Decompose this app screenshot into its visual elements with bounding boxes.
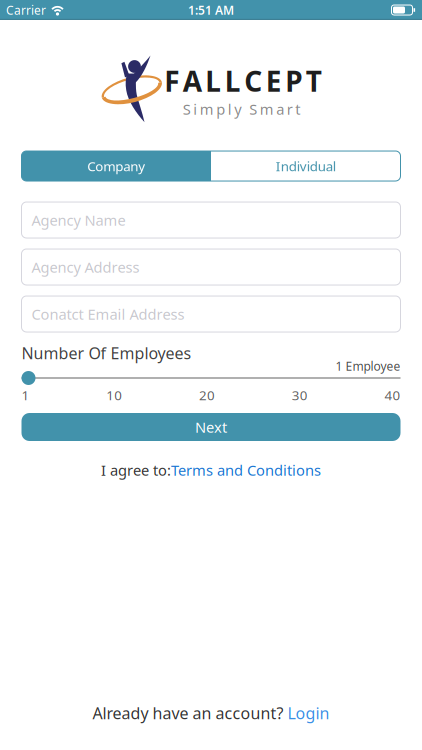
staticText: Next <box>195 417 227 437</box>
staticText: m <box>260 99 274 119</box>
staticText: 30 <box>292 386 308 404</box>
staticText: C <box>244 62 262 100</box>
staticText: Number Of Employees <box>21 342 191 364</box>
staticText: Carrier <box>6 2 46 18</box>
staticText: r <box>287 99 293 119</box>
button[interactable]: Company <box>21 151 211 181</box>
staticText: T <box>306 62 322 100</box>
staticText: Agency Address <box>31 257 139 277</box>
staticText: 10 <box>106 386 122 404</box>
staticText: I agree to: <box>101 460 171 480</box>
staticText: y <box>234 99 241 119</box>
staticText: i <box>193 99 197 119</box>
button[interactable]: Next <box>21 413 400 441</box>
staticText: P <box>285 62 302 100</box>
staticText: 1 <box>21 386 29 404</box>
staticText: E <box>266 62 282 100</box>
staticText: Conatct Email Address <box>31 304 184 324</box>
staticText: Agency Name <box>31 210 125 230</box>
button[interactable]: Individual <box>211 151 400 181</box>
staticText: A <box>183 62 202 100</box>
staticText: t <box>295 99 300 119</box>
button[interactable]: Terms and Conditions <box>171 460 321 480</box>
staticText: m <box>200 99 214 119</box>
staticText: L <box>205 62 221 100</box>
staticText: p <box>216 99 225 119</box>
staticText: Terms and Conditions <box>171 460 321 480</box>
staticText: Individual <box>276 157 336 175</box>
staticText: 20 <box>199 386 215 404</box>
staticText: l <box>228 99 232 119</box>
staticText: S <box>249 99 257 119</box>
staticText: a <box>276 99 284 119</box>
staticText: S <box>183 99 191 119</box>
staticText: 40 <box>384 386 400 404</box>
staticText: 1 Employee <box>335 358 400 374</box>
staticText: Already have an account? <box>92 702 283 724</box>
staticText: F <box>164 62 179 100</box>
button[interactable]: Login <box>287 702 329 724</box>
staticText: Company <box>87 157 145 175</box>
staticText: 1:51 AM <box>188 2 234 18</box>
staticText: L <box>225 62 241 100</box>
staticText: Login <box>287 702 329 724</box>
